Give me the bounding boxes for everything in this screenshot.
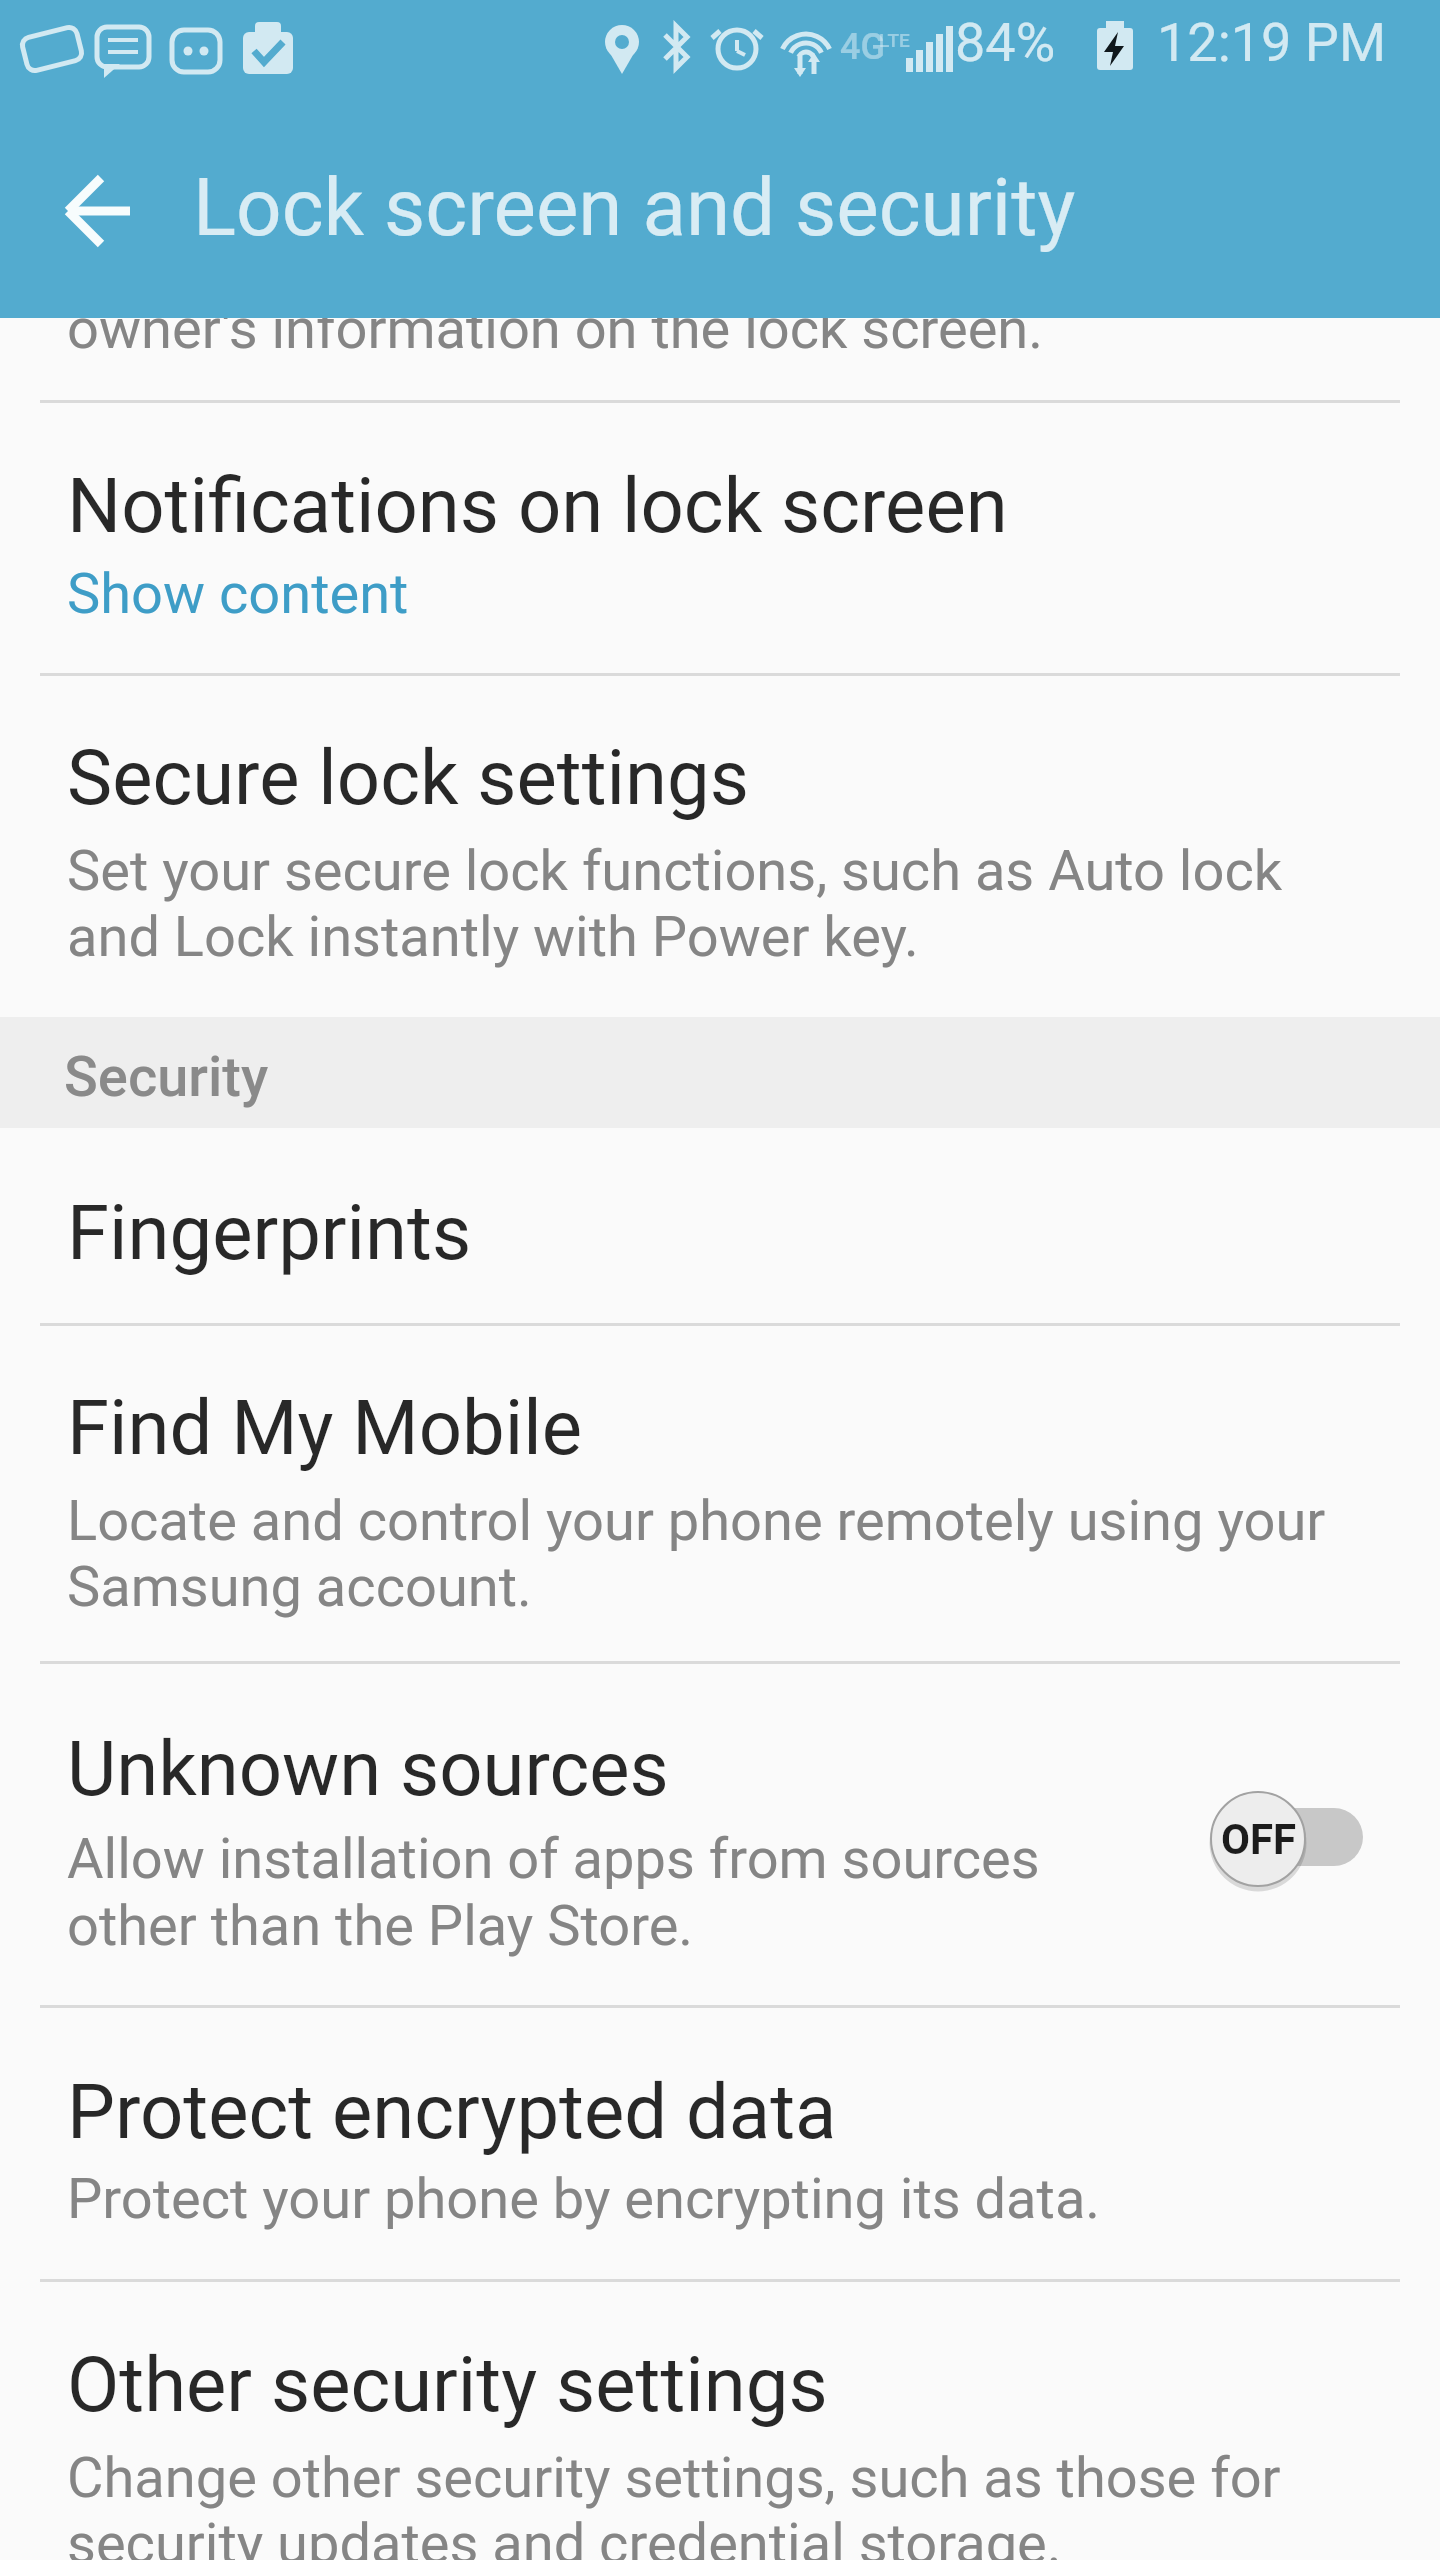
button[interactable]: Other security settings <box>0 2282 1440 2560</box>
staticText: and Lock instantly with Power key. <box>67 904 919 970</box>
staticText: Protect encrypted data <box>67 2067 837 2156</box>
button[interactable]: Unknown sources <box>0 1664 1440 2005</box>
staticText: Lock screen and security <box>193 161 1076 255</box>
staticText: Find My Mobile <box>67 1383 582 1472</box>
button[interactable]: Fingerprints <box>0 1128 1440 1323</box>
staticText: owner's information on the lock screen. <box>67 296 1044 362</box>
button[interactable]: Secure lock settings <box>0 676 1440 1017</box>
button[interactable]: Find My Mobile <box>0 1326 1440 1661</box>
staticText: other than the Play Store. <box>67 1893 694 1959</box>
staticText: Locate and control your phone remotely u… <box>67 1488 1326 1554</box>
button[interactable]: Protect encrypted data <box>0 2008 1440 2279</box>
button[interactable] <box>30 143 166 279</box>
staticText: Set your secure lock functions, such as … <box>67 838 1283 904</box>
staticText: Secure lock settings <box>67 733 749 822</box>
staticText: 12:19 PM <box>1157 11 1387 74</box>
staticText: 4G <box>840 26 885 68</box>
staticText: Other security settings <box>67 2340 828 2429</box>
staticText: Change other security settings, such as … <box>67 2445 1281 2511</box>
staticText: Allow installation of apps from sources <box>67 1826 1040 1892</box>
staticText: security updates and credential storage. <box>67 2511 1062 2560</box>
staticText: 84% <box>955 11 1056 74</box>
button[interactable] <box>0 318 1440 400</box>
staticText: Unknown sources <box>67 1724 669 1813</box>
staticText: Security <box>64 1044 269 1110</box>
staticText: OFF <box>1221 1815 1297 1864</box>
staticText: Protect your phone by encrypting its dat… <box>67 2166 1101 2232</box>
staticText: LTE <box>879 29 910 51</box>
staticText: Fingerprints <box>67 1188 472 1277</box>
staticText: Notifications on lock screen <box>67 461 1008 550</box>
staticText: Show content <box>67 561 409 627</box>
button[interactable]: OFF <box>1211 1792 1306 1887</box>
button[interactable]: Notifications on lock screen <box>0 403 1440 673</box>
staticText: Samsung account. <box>67 1554 532 1620</box>
